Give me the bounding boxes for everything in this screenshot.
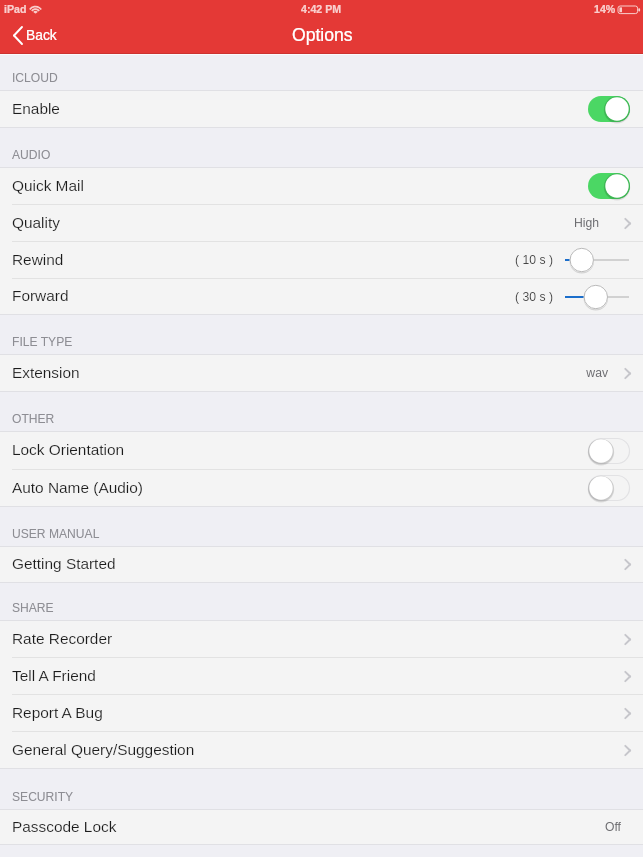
staticText: Rewind — [12, 251, 64, 268]
staticText: Getting Started — [12, 555, 116, 572]
button[interactable]: Passcode Lock — [0, 810, 643, 844]
button[interactable]: Rewind — [0, 242, 643, 278]
button[interactable]: General Query/Suggestion — [0, 732, 643, 768]
button[interactable]: Forward — [0, 279, 643, 314]
staticText: Rate Recorder — [12, 630, 113, 647]
button[interactable]: Report A Bug — [0, 695, 643, 731]
staticText: Options — [292, 25, 353, 45]
staticText: AUDIO — [12, 148, 51, 162]
staticText: Off — [581, 820, 621, 834]
staticText: Forward — [12, 287, 69, 304]
staticText: Auto Name (Audio) — [12, 479, 143, 496]
staticText: SECURITY — [12, 790, 74, 804]
staticText: Tell A Friend — [12, 667, 96, 684]
staticText: USER MANUAL — [12, 527, 100, 541]
button[interactable]: Switch on — [585, 171, 631, 201]
staticText: General Query/Suggestion — [12, 741, 195, 758]
button[interactable]: Tell A Friend — [0, 658, 643, 694]
staticText: iPad — [4, 3, 27, 15]
staticText: ( 30 s ) — [505, 290, 553, 304]
staticText: SHARE — [12, 601, 54, 615]
button[interactable]: Extension — [0, 355, 643, 391]
staticText: Quick Mail — [12, 177, 84, 194]
button[interactable]: Rate Recorder — [0, 621, 643, 657]
staticText: Report A Bug — [12, 704, 103, 721]
staticText: OTHER — [12, 412, 55, 426]
staticText: ICLOUD — [12, 71, 58, 85]
button[interactable]: Switch off — [585, 436, 631, 466]
staticText: High — [539, 216, 599, 230]
staticText: Passcode Lock — [12, 818, 117, 835]
button[interactable]: Quick Mail — [0, 168, 643, 204]
button[interactable]: Auto Name (Audio) — [0, 470, 643, 506]
button[interactable]: Back — [0, 22, 65, 49]
button[interactable]: Getting Started — [0, 547, 643, 582]
button[interactable]: Switch off — [585, 473, 631, 503]
staticText: wav — [548, 366, 608, 380]
staticText: Lock Orientation — [12, 441, 125, 458]
staticText: 4:42 PM — [301, 3, 342, 15]
staticText: ( 10 s ) — [505, 253, 553, 267]
button[interactable]: Quality — [0, 205, 643, 241]
staticText: Extension — [12, 364, 80, 381]
staticText: Back — [26, 28, 57, 43]
button[interactable]: Lock Orientation — [0, 432, 643, 469]
button[interactable]: Slider — [563, 246, 631, 274]
button[interactable]: Slider — [563, 283, 631, 311]
staticText: Enable — [12, 100, 60, 117]
button[interactable]: Switch on — [585, 94, 631, 124]
staticText: FILE TYPE — [12, 335, 73, 349]
staticText: Quality — [12, 214, 60, 231]
button[interactable]: Enable — [0, 91, 643, 127]
staticText: 14% — [594, 3, 616, 15]
